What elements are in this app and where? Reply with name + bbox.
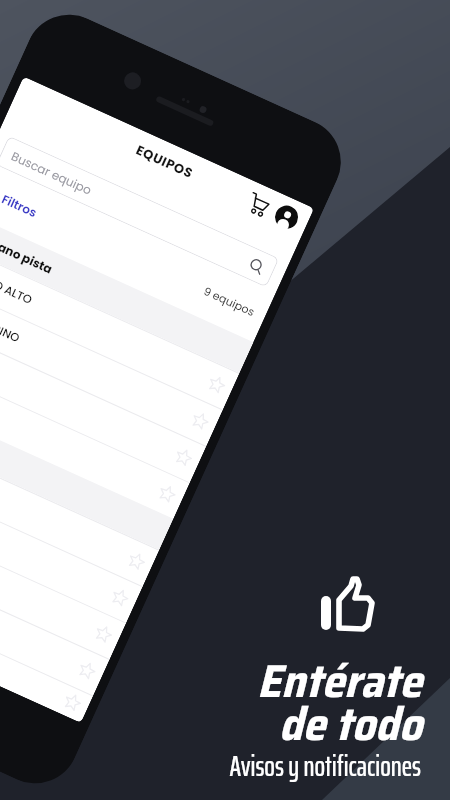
button[interactable]: RAYO VERDE — [0, 454, 143, 623]
staticText: Buscar equipo — [9, 147, 95, 199]
button[interactable]: Me gusta — [320, 575, 378, 633]
staticText: EQUIPO ALTO — [0, 263, 35, 308]
button[interactable]: Cuenta — [271, 202, 302, 232]
button[interactable]: Buscar — [247, 256, 267, 276]
button[interactable]: Buscar equipo — [0, 136, 279, 287]
button[interactable]: UNIÓN NORTE — [0, 491, 126, 659]
staticText: Verano pista — [0, 229, 56, 278]
staticText: Avisos y notificaciones — [229, 744, 421, 788]
button[interactable]: CLUB MARINO — [0, 278, 223, 446]
button[interactable]: DEPORTIVO SUR — [0, 418, 159, 586]
staticText: Entérate — [256, 645, 422, 717]
button[interactable]: PISTA LIBRE — [0, 564, 93, 723]
staticText: de todo — [278, 688, 422, 760]
button[interactable]: EQUIPO ALTO — [0, 241, 239, 409]
staticText: 9 equipos — [202, 283, 258, 319]
button[interactable]: ATLÉTICO — [0, 314, 206, 482]
button[interactable]: Verano ruta — [0, 387, 173, 550]
button[interactable]: Carrito — [242, 187, 276, 221]
button[interactable]: LOS PINOS — [0, 351, 190, 519]
button[interactable]: C.D. COSTA — [0, 527, 110, 695]
button[interactable]: Verano pista — [0, 210, 254, 373]
staticText: EQUIPOS — [133, 141, 196, 182]
button[interactable]: Filtros — [0, 190, 40, 221]
staticText: CLUB MARINO — [0, 299, 22, 346]
